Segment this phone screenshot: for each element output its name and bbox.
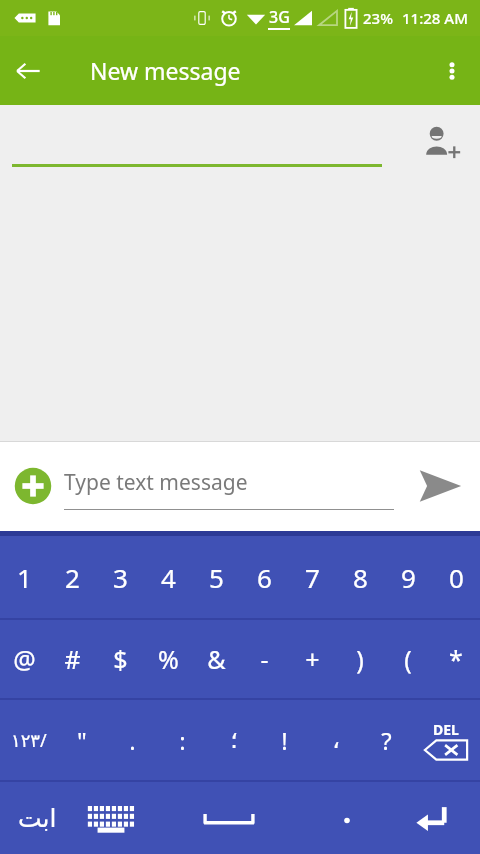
button[interactable]: 3 [96, 536, 144, 618]
button[interactable]: 7 [288, 536, 336, 618]
button[interactable]: & [192, 620, 240, 698]
button[interactable]: @ [0, 620, 48, 698]
staticText: - [260, 642, 269, 676]
button[interactable]: % [144, 620, 192, 698]
button[interactable] [310, 782, 384, 854]
staticText: 8 [353, 560, 368, 595]
button[interactable]: # [48, 620, 96, 698]
button[interactable]: Enter [384, 782, 480, 854]
button[interactable]: " [57, 700, 107, 780]
staticText: " [77, 724, 87, 757]
button[interactable]: Add attachment [10, 463, 56, 509]
staticText: & [207, 642, 226, 676]
staticText: ابت [18, 804, 57, 833]
staticText: ) [356, 642, 364, 676]
staticText: . [129, 724, 136, 757]
button[interactable]: Delete [412, 700, 480, 780]
staticText: ١٢٣/ [11, 728, 47, 753]
staticText: 9 [401, 560, 416, 595]
staticText: ( [404, 642, 412, 676]
button[interactable]: ١٢٣/ [0, 700, 57, 780]
button[interactable]: * [432, 620, 480, 698]
button[interactable]: 0 [432, 536, 480, 618]
button[interactable]: - [240, 620, 288, 698]
button[interactable]: ! [259, 700, 310, 780]
button[interactable]: ، [310, 700, 361, 780]
staticText: 3G [269, 6, 290, 28]
staticText: 7 [305, 560, 320, 595]
staticText: 0 [449, 560, 464, 595]
button[interactable]: ابت [0, 782, 74, 854]
button[interactable]: 2 [48, 536, 96, 618]
button[interactable]: . [107, 700, 157, 780]
staticText: DEL [433, 720, 459, 739]
button[interactable]: $ [96, 620, 144, 698]
button[interactable]: ؛ [208, 700, 259, 780]
staticText: New message [90, 55, 241, 86]
staticText: ? [381, 724, 392, 757]
staticText: + [305, 642, 320, 676]
button[interactable]: : [157, 700, 208, 780]
button[interactable]: Send [410, 456, 470, 516]
button[interactable]: Back [0, 43, 56, 99]
staticText: @ [13, 642, 36, 676]
staticText: ، [332, 726, 340, 754]
staticText: 4 [161, 560, 176, 595]
button[interactable]: ) [336, 620, 384, 698]
button[interactable]: Add contact [414, 117, 466, 169]
staticText: 6 [257, 560, 272, 595]
staticText: Type text message [64, 468, 248, 497]
button[interactable]: 1 [0, 536, 48, 618]
staticText: 2 [65, 560, 80, 595]
staticText: 1 [17, 560, 32, 595]
button[interactable]: ( [384, 620, 432, 698]
button[interactable]: 5 [192, 536, 240, 618]
button[interactable]: More options [424, 43, 480, 99]
button[interactable]: Switch keyboard [74, 782, 148, 854]
staticText: : [179, 724, 186, 757]
button[interactable]: 4 [144, 536, 192, 618]
button[interactable]: + [288, 620, 336, 698]
staticText: 5 [209, 560, 224, 595]
staticText: 11:28 AM [402, 8, 468, 28]
staticText: % [158, 642, 179, 676]
button[interactable]: ? [361, 700, 412, 780]
button[interactable]: Space [148, 782, 310, 854]
staticText: ! [281, 724, 288, 757]
button[interactable]: 6 [240, 536, 288, 618]
staticText: 3 [113, 560, 128, 595]
staticText: # [64, 642, 81, 676]
button[interactable]: 9 [384, 536, 432, 618]
button[interactable]: 8 [336, 536, 384, 618]
staticText: ؛ [230, 726, 238, 754]
button[interactable]: Type text message [64, 456, 406, 516]
staticText: * [449, 642, 463, 676]
staticText: $ [113, 642, 128, 676]
staticText: 23% [363, 8, 393, 28]
